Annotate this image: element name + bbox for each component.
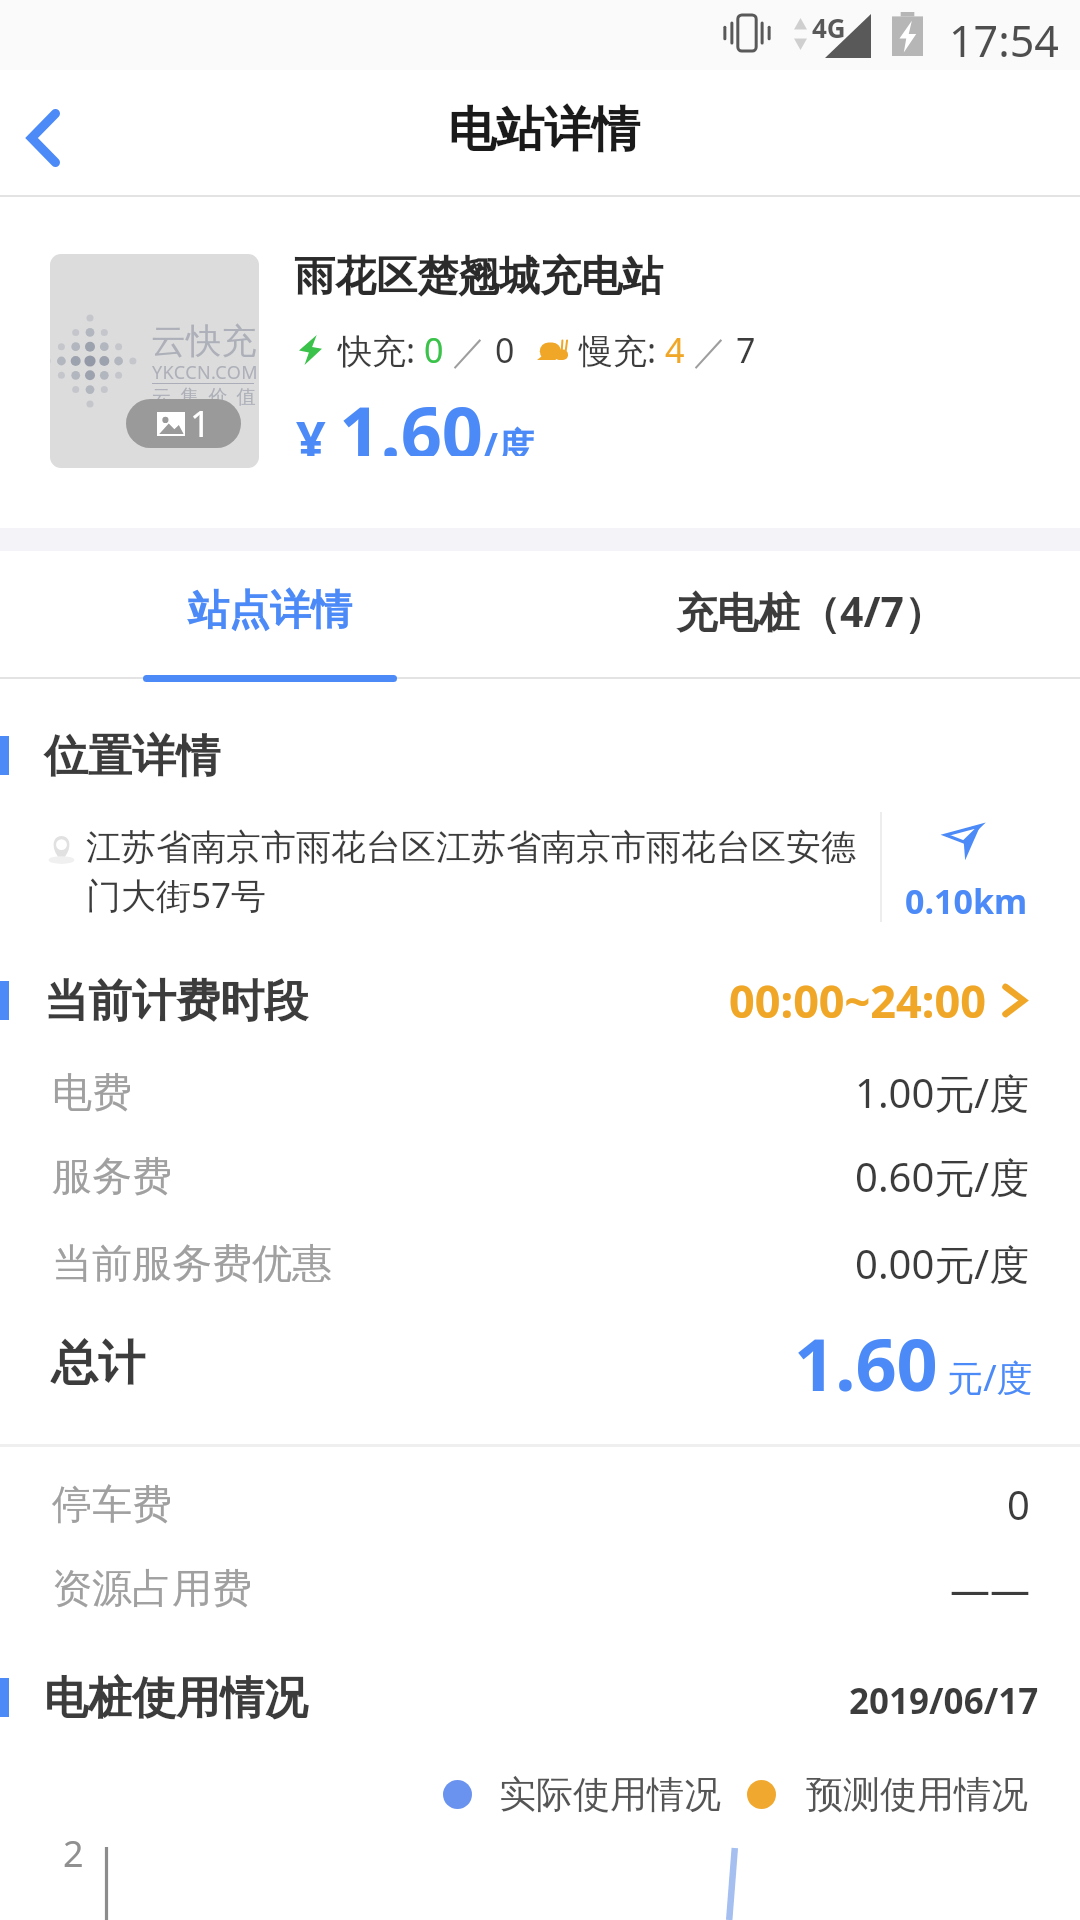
staticText: 电桩使用情况	[44, 1671, 308, 1726]
staticText: 雨花区楚翘城充电站	[294, 251, 663, 303]
staticText: ¥ 1.60/度	[296, 382, 534, 456]
button[interactable]: Station photo	[50, 254, 259, 468]
staticText: 1.60 元/度	[794, 1314, 1033, 1412]
staticText: 0.00元/度	[855, 1236, 1030, 1291]
staticText: 实际使用情况	[499, 1771, 721, 1818]
staticText: ——	[950, 1561, 1030, 1615]
staticText: 停车费	[52, 1479, 172, 1529]
button[interactable]: Back	[0, 70, 110, 195]
staticText: 慢充: 4 ／ 7	[579, 327, 756, 373]
button[interactable]: 00:00~24:00	[729, 968, 1027, 1032]
staticText: 预测使用情况	[806, 1771, 1028, 1818]
staticText: 云快充	[151, 319, 257, 363]
staticText: 快充: 0 ／ 0	[338, 327, 515, 373]
staticText: 2019/06/17	[849, 1677, 1039, 1725]
staticText: 服务费	[52, 1151, 172, 1201]
staticText: 总计	[51, 1334, 145, 1393]
staticText: 当前计费时段	[44, 974, 308, 1029]
staticText: 当前服务费优惠	[52, 1238, 332, 1288]
button[interactable]: 站点详情	[0, 551, 540, 671]
staticText: 江苏省南京市雨花台区江苏省南京市雨花台区安德门大街57号	[86, 825, 861, 918]
staticText: 17:54	[949, 11, 1059, 70]
staticText: 2	[63, 1829, 84, 1878]
staticText: 位置详情	[44, 729, 220, 784]
staticText: 00:00~24:00	[729, 970, 986, 1031]
staticText: 充电桩（4/7）	[676, 583, 945, 639]
staticText: 云集价值	[152, 385, 259, 409]
staticText: 站点详情	[188, 585, 352, 637]
staticText: 1.00元/度	[855, 1065, 1030, 1120]
button[interactable]: Navigate	[882, 805, 1080, 930]
staticText: 电站详情	[448, 100, 640, 160]
staticText: 0.60元/度	[855, 1149, 1030, 1204]
staticText: 0	[1007, 1477, 1030, 1531]
staticText: 电费	[52, 1067, 132, 1117]
staticText: 资源占用费	[52, 1563, 252, 1613]
staticText: YKCCN.COM	[152, 360, 258, 385]
staticText: 4G	[812, 10, 846, 45]
staticText: 1	[190, 399, 211, 448]
staticText: 0.10km	[905, 878, 1028, 924]
button[interactable]: 充电桩（4/7）	[540, 551, 1080, 671]
